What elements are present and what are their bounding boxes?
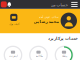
button[interactable]: مکالمه [30,46,47,60]
staticText: اینترنت [8,54,17,57]
staticText: محمد رضایی [33,19,58,24]
staticText: خدمات پرکاربرد [47,36,77,41]
button[interactable]: App [1,1,7,7]
staticText: پیامک [61,54,67,57]
staticText: سلام، خوش آمدید [38,15,58,18]
button[interactable]: Menu [70,0,79,9]
button[interactable]: اینترنت [4,46,22,60]
staticText: حساب من [50,3,67,7]
button[interactable]: کیف پول [6,14,21,25]
button[interactable]: پیامک [55,46,73,60]
button[interactable]: Notifications [7,2,12,7]
staticText: مکالمه [35,54,42,57]
staticText: کیف پول [9,22,19,25]
button[interactable]: Profile [61,13,77,29]
